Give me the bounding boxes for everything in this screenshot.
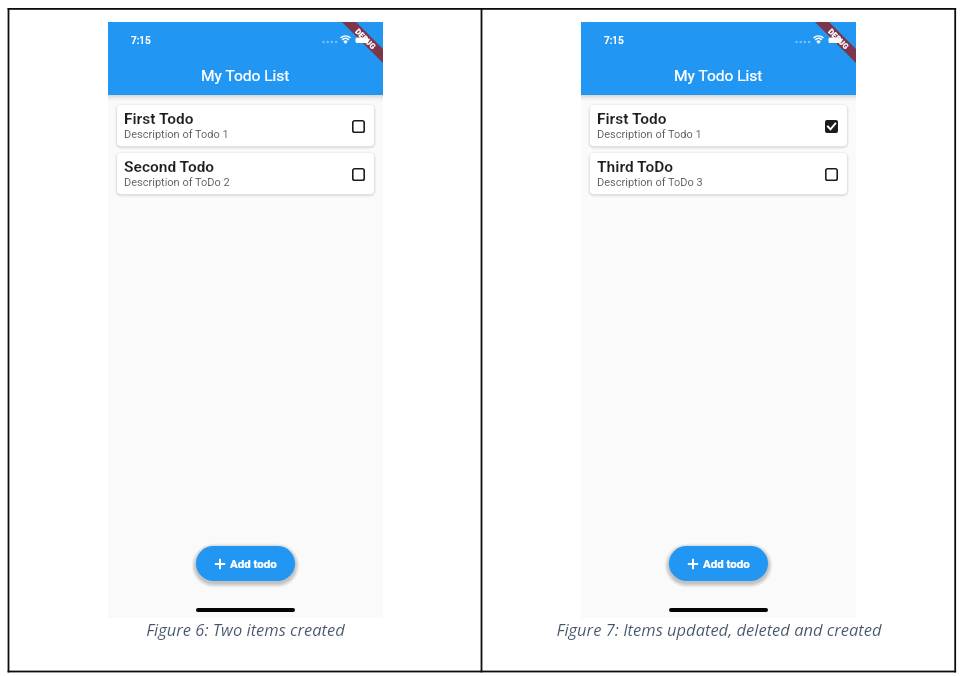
button[interactable]: Mark First Todo incomplete (822, 117, 840, 135)
staticText: Figure 7: Items updated, deleted and cre… (556, 618, 882, 640)
staticText: Second Todo (124, 158, 215, 176)
staticText: 7:15 (131, 35, 151, 47)
staticText: Description of ToDo 2 (124, 176, 230, 189)
staticText: Description of ToDo 3 (597, 176, 703, 189)
staticText: Add todo (703, 557, 750, 570)
staticText: DEBUG (353, 27, 378, 52)
button[interactable]: Add todo (196, 546, 295, 581)
button[interactable]: First Todo (590, 105, 847, 146)
staticText: First Todo (124, 110, 194, 128)
button[interactable]: Mark First Todo complete (349, 117, 367, 135)
staticText: Third ToDo (597, 158, 673, 176)
staticText: First Todo (597, 110, 667, 128)
button[interactable]: Third ToDo (590, 153, 847, 194)
staticText: My Todo List (674, 67, 763, 85)
button[interactable]: First Todo (117, 105, 374, 146)
button[interactable]: Mark Third ToDo complete (822, 165, 840, 183)
button[interactable]: Mark Second Todo complete (349, 165, 367, 183)
staticText: 7:15 (604, 35, 624, 47)
staticText: Add todo (230, 557, 277, 570)
staticText: My Todo List (201, 67, 290, 85)
staticText: Description of Todo 1 (124, 128, 229, 141)
staticText: DEBUG (826, 27, 851, 52)
button[interactable]: Add todo (669, 546, 768, 581)
staticText: Figure 6: Two items created (146, 618, 345, 640)
button[interactable]: Second Todo (117, 153, 374, 194)
staticText: Description of Todo 1 (597, 128, 702, 141)
